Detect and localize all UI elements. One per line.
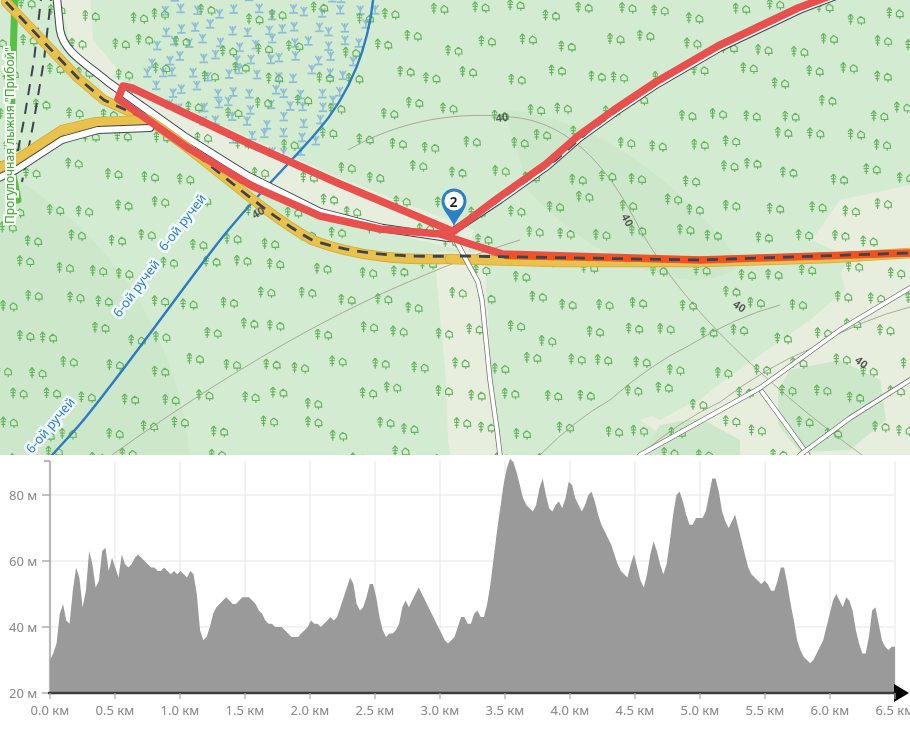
button[interactable] — [0, 0, 910, 455]
